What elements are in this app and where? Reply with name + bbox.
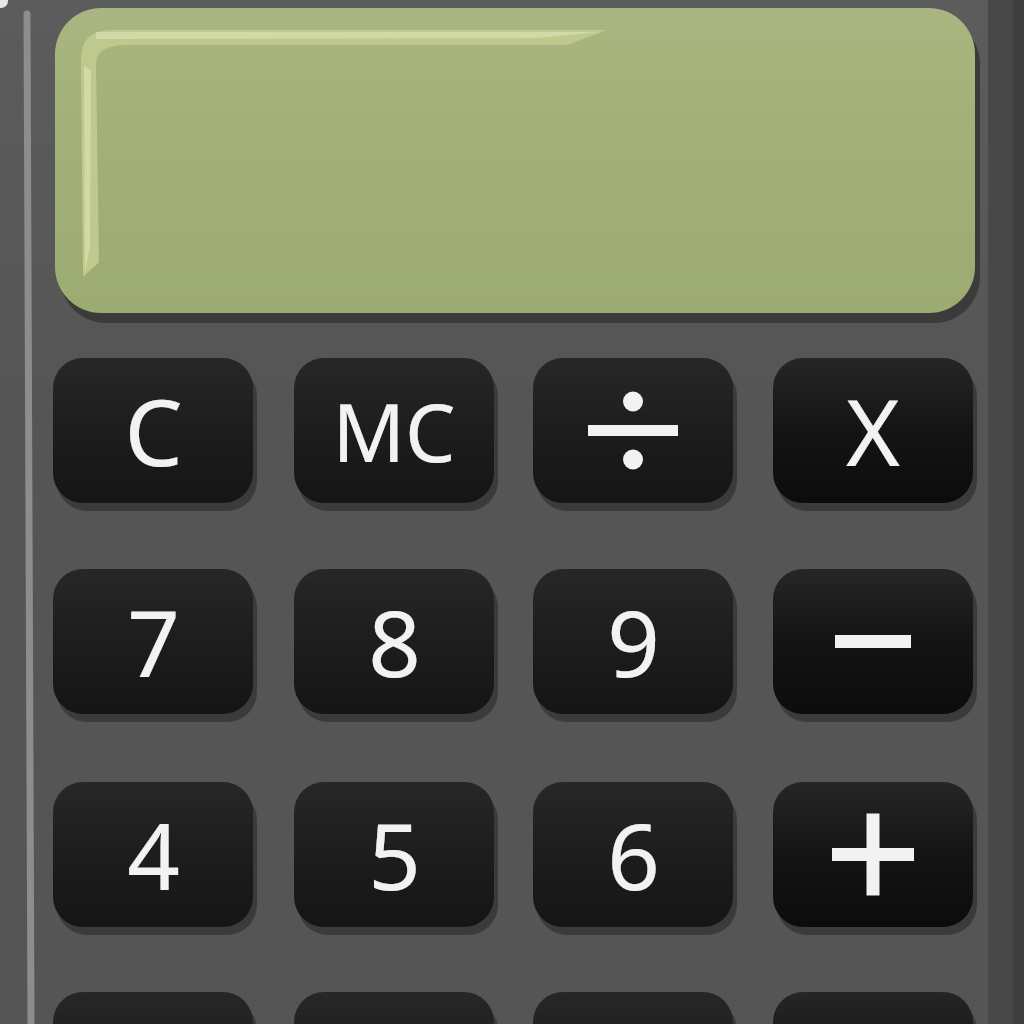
- staticText: 9: [607, 579, 660, 704]
- button[interactable]: 6: [533, 782, 733, 927]
- button[interactable]: Clear: [53, 358, 253, 503]
- button[interactable]: Divide: [533, 358, 733, 503]
- button[interactable]: Memory clear: [294, 358, 494, 503]
- staticText: 6: [607, 792, 660, 917]
- button[interactable]: 8: [294, 569, 494, 714]
- staticText: 7: [127, 579, 180, 704]
- button[interactable]: 5: [294, 782, 494, 927]
- staticText: MC: [332, 376, 456, 485]
- staticText: 5: [368, 792, 421, 917]
- staticText: 4: [127, 792, 180, 917]
- button[interactable]: Multiply: [773, 358, 973, 503]
- button[interactable]: 9: [533, 569, 733, 714]
- button[interactable]: 3: [533, 992, 733, 1024]
- staticText: C: [124, 368, 183, 493]
- button[interactable]: 1: [53, 992, 253, 1024]
- button[interactable]: 7: [53, 569, 253, 714]
- button[interactable]: Plus: [773, 782, 973, 927]
- button[interactable]: 2: [294, 992, 494, 1024]
- staticText: 8: [368, 579, 421, 704]
- staticText: X: [846, 368, 900, 493]
- button[interactable]: Minus: [773, 569, 973, 714]
- button[interactable]: Equals: [773, 992, 973, 1024]
- button[interactable]: 4: [53, 782, 253, 927]
